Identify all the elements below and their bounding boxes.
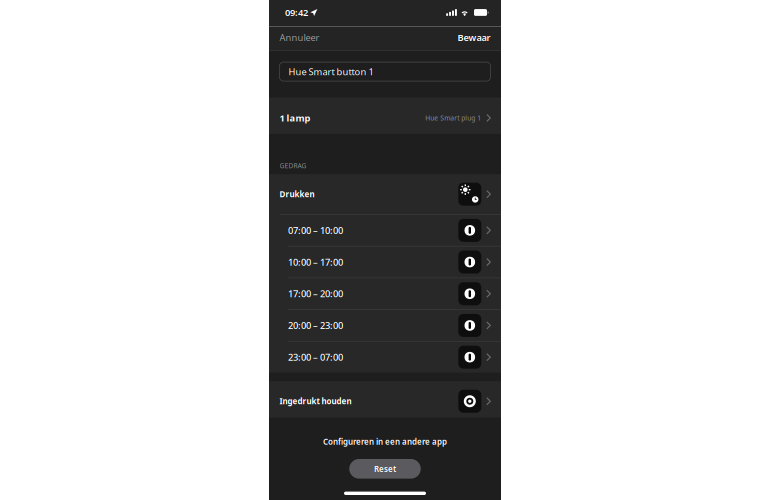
- button[interactable]: Bewaar: [457, 26, 490, 48]
- button[interactable]: 1 lamp: [269, 98, 501, 134]
- staticText: Hue Smart plug 1: [425, 113, 481, 122]
- staticText: Drukken: [279, 189, 314, 199]
- staticText: 10:00 – 17:00: [288, 256, 343, 268]
- button[interactable]: 17:00 – 20:00: [269, 278, 501, 309]
- button[interactable]: 23:00 – 07:00: [269, 342, 501, 373]
- button[interactable]: 07:00 – 10:00: [269, 215, 501, 246]
- button[interactable]: 10:00 – 17:00: [269, 246, 501, 277]
- staticText: Ingedrukt houden: [279, 396, 351, 406]
- staticText: Annuleer: [279, 31, 319, 43]
- staticText: 09:42: [285, 6, 308, 19]
- staticText: Hue Smart button 1: [288, 65, 373, 78]
- button[interactable]: Reset: [349, 459, 421, 479]
- staticText: Bewaar: [457, 31, 490, 43]
- staticText: 20:00 – 23:00: [288, 319, 343, 332]
- staticText: Reset: [374, 463, 396, 474]
- staticText: 17:00 – 20:00: [288, 288, 343, 300]
- staticText: 1 lamp: [279, 112, 310, 124]
- staticText: 07:00 – 10:00: [288, 224, 343, 237]
- staticText: GEDRAG: [279, 161, 306, 170]
- staticText: Configureren in een andere app: [323, 436, 447, 447]
- button[interactable]: Drukken: [269, 174, 501, 214]
- staticText: 23:00 – 07:00: [288, 351, 343, 363]
- button[interactable]: Annuleer: [279, 26, 319, 48]
- button[interactable]: 20:00 – 23:00: [269, 310, 501, 341]
- button[interactable]: Ingedrukt houden: [269, 381, 501, 417]
